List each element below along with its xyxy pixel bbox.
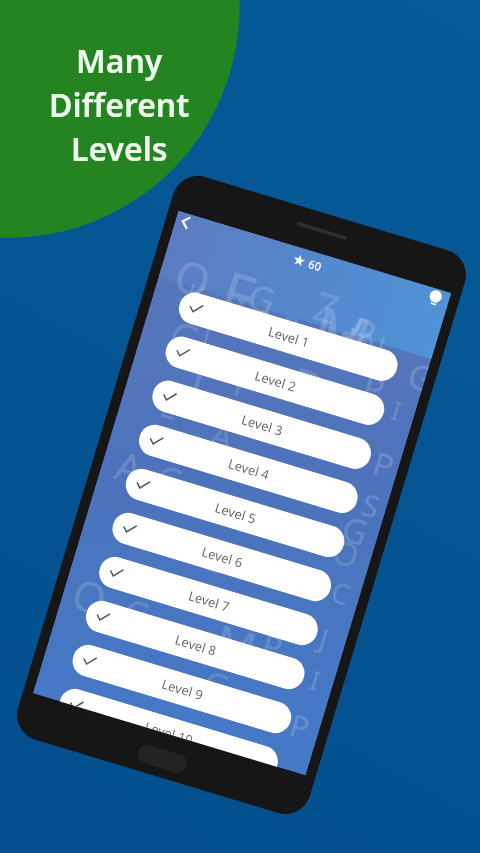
staticText: D — [283, 352, 332, 419]
staticText: S — [357, 483, 385, 527]
staticText: I — [230, 290, 249, 326]
staticText: T — [195, 315, 220, 353]
staticText: Level 1 — [266, 322, 311, 352]
staticText: G — [163, 307, 207, 367]
staticText: G — [403, 351, 432, 400]
staticText: Level 9 — [160, 674, 205, 704]
staticText: M — [208, 609, 264, 678]
staticText: Level 2 — [253, 366, 298, 396]
staticText: S — [251, 300, 273, 336]
staticText: G — [150, 453, 190, 507]
staticText: G — [336, 505, 374, 556]
staticText: P — [368, 441, 400, 489]
staticText: J — [315, 619, 333, 657]
staticText: Level 6 — [199, 542, 245, 572]
staticText: O — [168, 244, 219, 312]
staticText: L — [183, 357, 221, 418]
button[interactable]: Level 10 — [60, 685, 282, 767]
staticText: Z — [250, 453, 279, 498]
staticText: Z — [308, 277, 345, 336]
button[interactable]: Level 4 — [135, 421, 362, 517]
staticText: Level 5 — [213, 498, 258, 528]
staticText: F — [229, 363, 256, 407]
staticText: E — [156, 385, 184, 429]
staticText: G — [118, 587, 156, 638]
staticText: Many — [76, 39, 163, 83]
staticText: W — [315, 311, 370, 377]
button[interactable]: Hint — [419, 285, 450, 315]
button[interactable]: Back — [172, 211, 200, 238]
staticText: P — [357, 363, 391, 413]
staticText: C — [327, 572, 355, 614]
staticText: 60 — [307, 256, 323, 274]
staticText: Level 8 — [173, 630, 218, 660]
staticText: G — [242, 272, 282, 326]
staticText: F — [212, 251, 265, 335]
staticText: Level 3 — [239, 410, 285, 440]
staticText: P — [257, 622, 288, 670]
staticText: Levels — [71, 127, 168, 171]
button[interactable]: Level 3 — [148, 377, 375, 473]
staticText: O — [328, 529, 364, 578]
staticText: Level 7 — [186, 586, 232, 616]
staticText: A — [205, 411, 239, 461]
button[interactable]: Level 9 — [69, 641, 295, 737]
staticText: I — [306, 662, 325, 698]
button[interactable]: Level 1 — [175, 289, 402, 385]
button[interactable]: Level 6 — [108, 509, 335, 605]
staticText: Level 10 — [145, 717, 196, 741]
button[interactable]: Level 8 — [82, 597, 308, 693]
staticText: P — [344, 303, 383, 362]
button[interactable]: Level 7 — [95, 553, 322, 649]
button[interactable]: Level 5 — [122, 465, 348, 561]
staticText: B — [277, 306, 304, 345]
staticText: G — [198, 659, 235, 711]
staticText: Level 4 — [226, 454, 271, 484]
staticText: K — [182, 273, 210, 315]
staticText: O — [66, 564, 114, 628]
staticText: M — [303, 285, 382, 382]
staticText: I — [342, 318, 363, 357]
staticText: Different — [49, 83, 190, 127]
staticText: I — [387, 392, 406, 428]
button[interactable]: Level 2 — [162, 333, 388, 429]
staticText: N — [354, 320, 392, 371]
staticText: G — [193, 532, 231, 584]
staticText: P — [285, 704, 315, 749]
staticText: A — [109, 437, 150, 496]
